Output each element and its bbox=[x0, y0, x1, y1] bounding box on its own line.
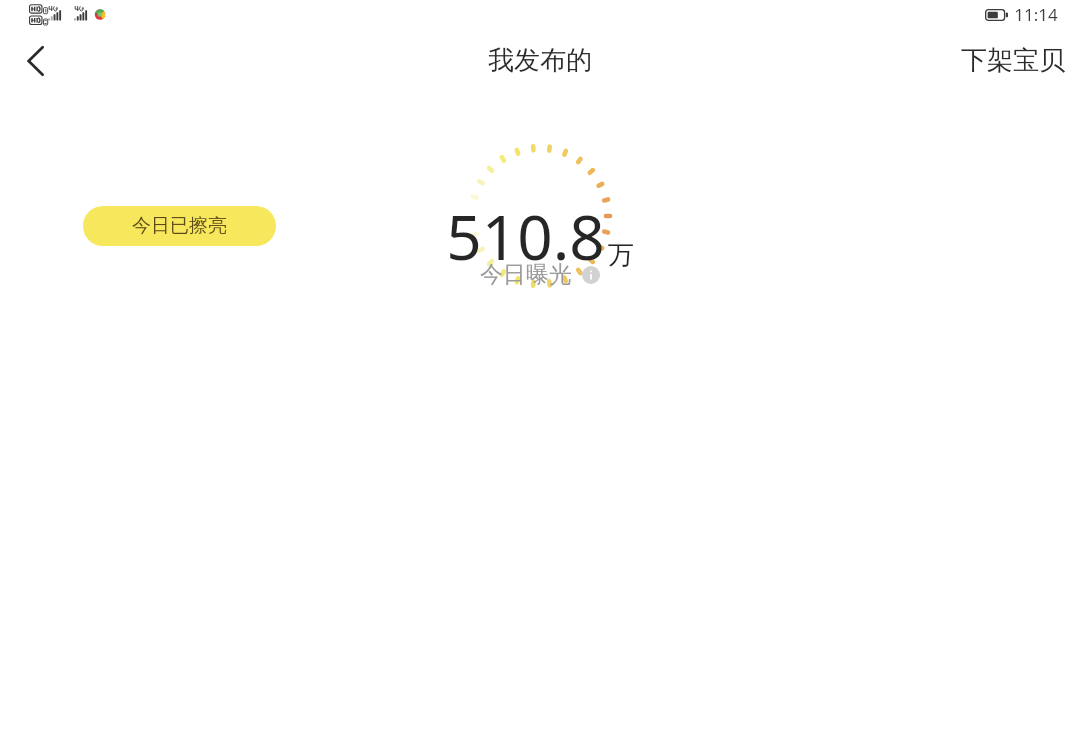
staticText: 万 bbox=[608, 239, 634, 272]
staticText: 今日已擦亮 bbox=[132, 214, 227, 238]
staticText: 今日曝光 bbox=[480, 260, 572, 289]
button[interactable]: 下架宝贝 bbox=[961, 44, 1065, 77]
other: Info bbox=[582, 266, 600, 284]
button[interactable]: Back bbox=[8, 34, 62, 88]
button[interactable]: 今日已擦亮 bbox=[83, 206, 276, 246]
staticText: 510.8 bbox=[446, 194, 605, 278]
button[interactable]: 今日曝光 bbox=[480, 260, 600, 289]
staticText: 下架宝贝 bbox=[961, 44, 1065, 77]
staticText: 11:14 bbox=[1014, 3, 1058, 26]
staticText: 我发布的 bbox=[488, 44, 592, 77]
